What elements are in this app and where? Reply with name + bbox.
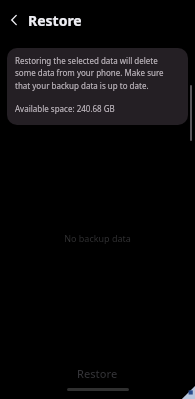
button[interactable]: Back [4,10,24,30]
staticText: No backup data [0,232,195,244]
button[interactable]: Restore [0,361,195,385]
staticText: Restoring the selected data will delete … [15,55,180,92]
staticText: Restore [28,11,82,30]
staticText: Restore [77,366,118,381]
staticText: Available space: 240.68 GB [15,103,115,114]
